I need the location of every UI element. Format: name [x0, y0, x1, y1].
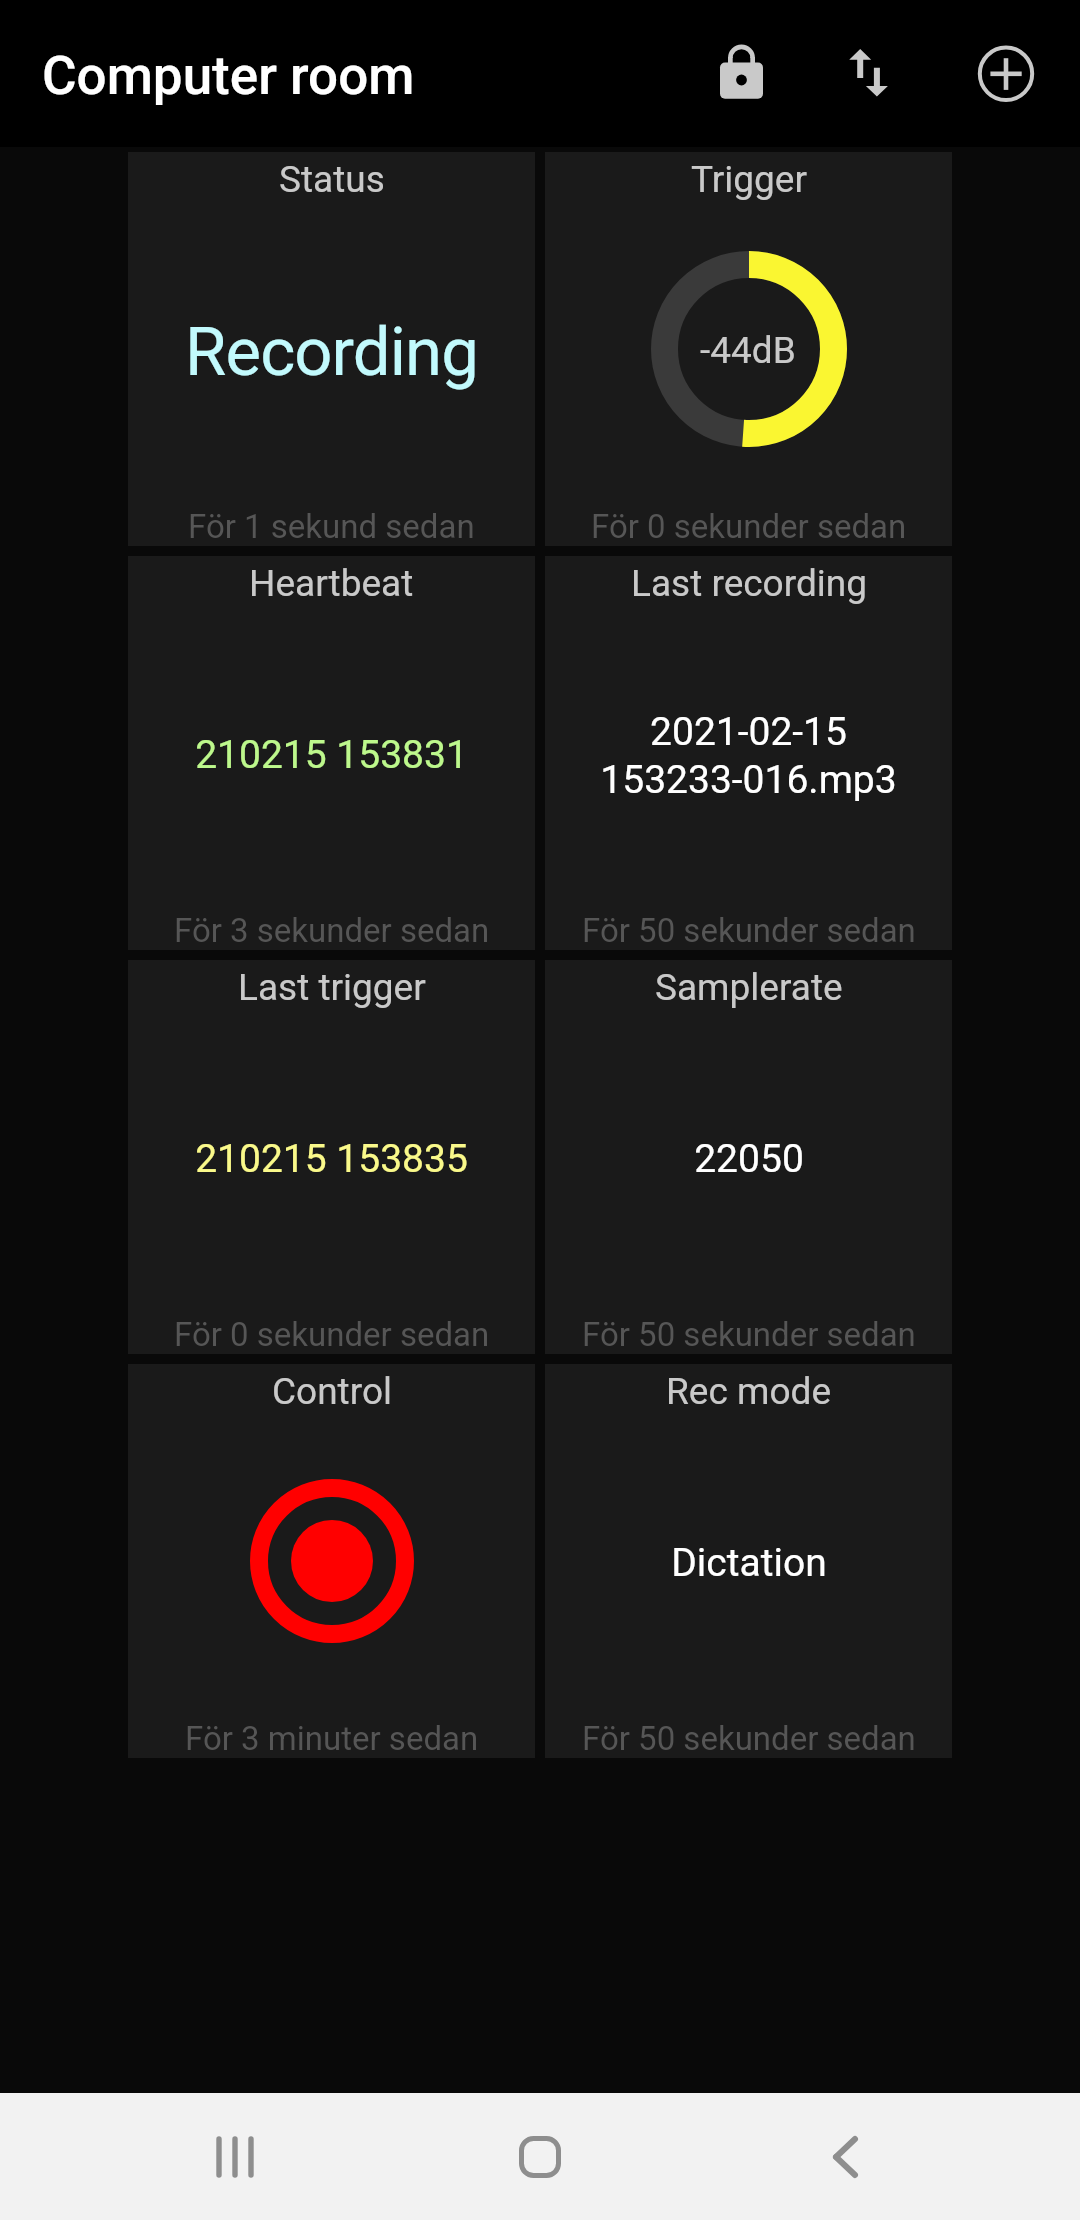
button[interactable]: Record	[250, 1479, 414, 1643]
button[interactable]: Control	[128, 1364, 535, 1758]
staticText: För 50 sekunder sedan	[582, 1719, 916, 1758]
button[interactable]: Last trigger	[128, 960, 535, 1354]
staticText: Last recording	[631, 562, 867, 605]
button[interactable]: Add	[958, 26, 1054, 122]
staticText: Last trigger	[238, 966, 426, 1009]
button[interactable]: Rec mode	[545, 1364, 952, 1758]
staticText: Trigger	[691, 158, 807, 201]
button[interactable]: Sync	[820, 26, 916, 122]
staticText: För 1 sekund sedan	[188, 507, 475, 546]
button[interactable]: Status	[128, 152, 535, 546]
staticText: 210215 153831	[195, 732, 468, 778]
staticText: Status	[279, 158, 385, 201]
staticText: För 50 sekunder sedan	[582, 1315, 916, 1354]
staticText: För 3 sekunder sedan	[174, 911, 490, 950]
staticText: För 50 sekunder sedan	[582, 911, 916, 950]
staticText: Samplerate	[655, 966, 843, 1009]
staticText: Heartbeat	[249, 562, 414, 605]
staticText: Rec mode	[666, 1370, 832, 1413]
button[interactable]: Last recording	[545, 556, 952, 950]
staticText: Recording	[185, 313, 478, 392]
staticText: 22050	[694, 1136, 804, 1182]
button[interactable]: Back	[775, 2093, 915, 2220]
button[interactable]: Home	[470, 2093, 610, 2220]
staticText: För 3 minuter sedan	[185, 1719, 479, 1758]
staticText: 210215 153835	[195, 1136, 468, 1182]
staticText: För 0 sekunder sedan	[174, 1315, 490, 1354]
staticText: 2021-02-15 153233-016.mp3	[600, 709, 897, 802]
staticText: Dictation	[671, 1540, 827, 1586]
button[interactable]: Samplerate	[545, 960, 952, 1354]
staticText: För 0 sekunder sedan	[591, 507, 907, 546]
staticText: Control	[272, 1370, 392, 1413]
button[interactable]: Recent apps	[165, 2093, 305, 2220]
button[interactable]: Trigger	[545, 152, 952, 546]
staticText: -44dB	[700, 329, 796, 372]
staticText: Computer room	[42, 45, 415, 107]
button[interactable]: Heartbeat	[128, 556, 535, 950]
button[interactable]: Lock	[693, 26, 789, 122]
